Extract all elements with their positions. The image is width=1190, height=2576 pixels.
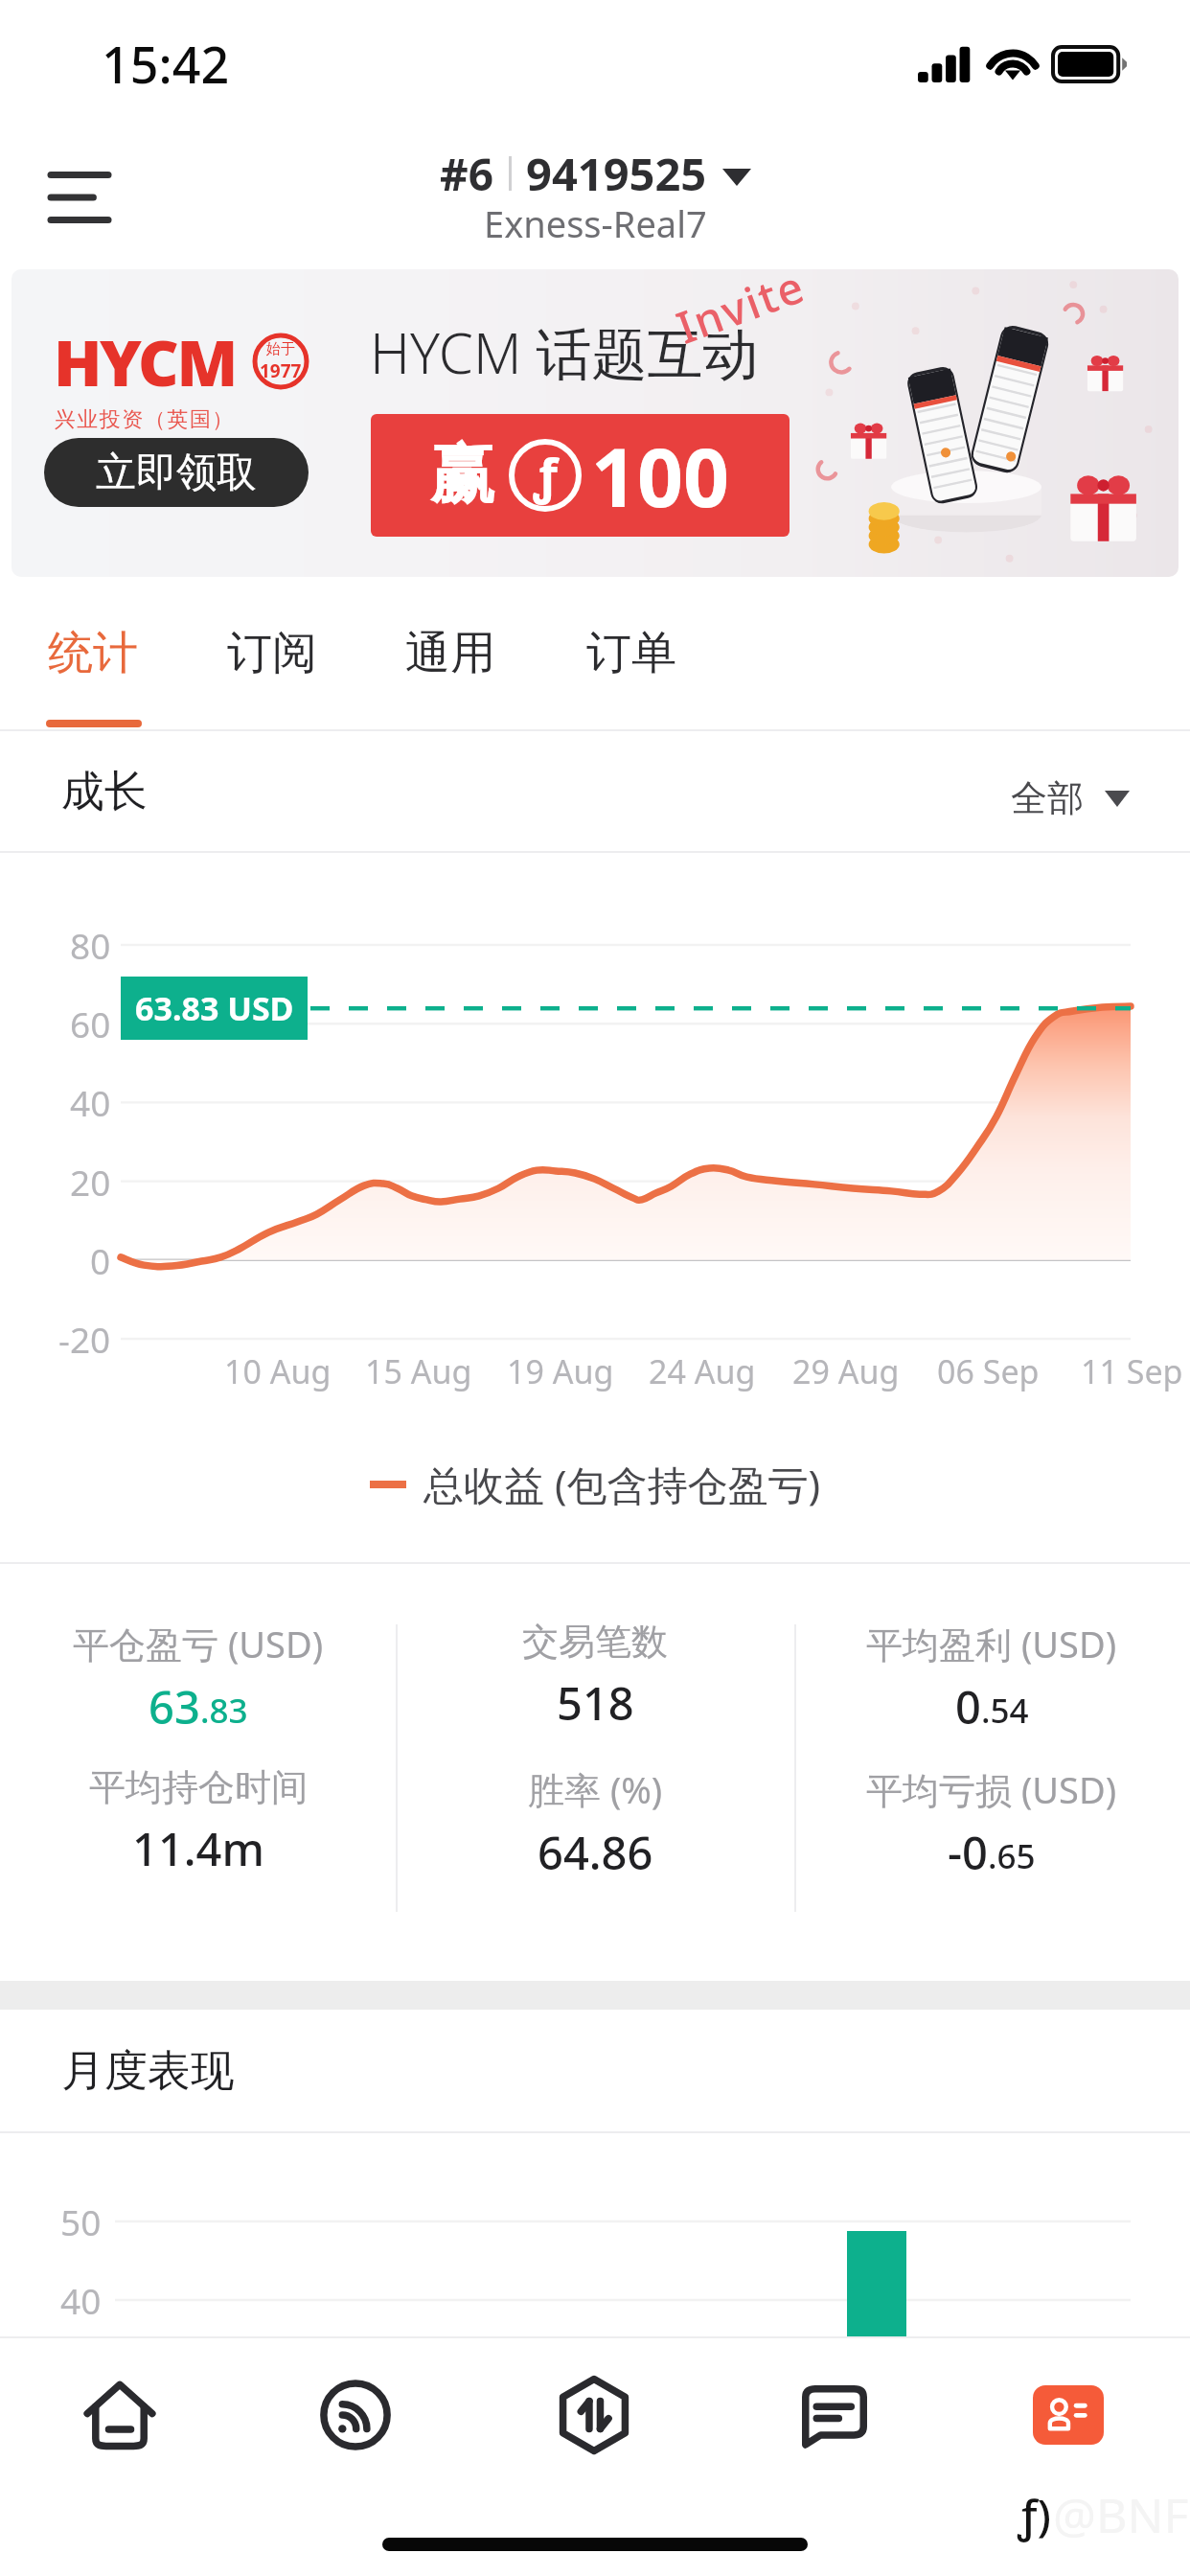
staticText: 兴业投资（英国） [54, 406, 234, 433]
button[interactable]: 胜率 (%) [403, 1764, 787, 1908]
button[interactable]: HYCM [11, 269, 1179, 577]
button[interactable]: Profile [1006, 2353, 1131, 2477]
button[interactable]: 订单 [560, 577, 703, 731]
staticText: @BNF [1053, 2482, 1189, 2547]
staticText: 63.83 USD [135, 986, 294, 1030]
staticText: 80 [70, 921, 111, 969]
staticText: .65 [988, 1833, 1036, 1879]
staticText: 全部 [1011, 775, 1084, 821]
staticText: 订阅 [227, 625, 317, 681]
button[interactable]: 平均亏损 (USD) [800, 1764, 1183, 1908]
staticText: 11.4m [132, 1818, 264, 1879]
staticText: 518 [557, 1672, 634, 1734]
button[interactable]: 平均盈利 (USD) [800, 1619, 1183, 1762]
staticText: 成长 [61, 765, 148, 819]
button[interactable]: 交易笔数 [403, 1619, 787, 1762]
staticText: 始于 [266, 340, 295, 358]
staticText: 24 Aug [649, 1349, 756, 1393]
button[interactable]: 统计 [21, 577, 165, 731]
staticText: 40 [70, 1078, 111, 1126]
staticText: 15:42 [102, 30, 230, 98]
staticText: 50 [60, 2197, 102, 2245]
staticText: .83 [200, 1688, 248, 1734]
button[interactable]: 立即领取 [44, 438, 309, 507]
staticText: 平均持仓时间 [89, 1764, 308, 1810]
staticText: 平均盈利 (USD) [866, 1619, 1117, 1668]
button[interactable]: Menu [27, 149, 132, 245]
button[interactable]: 平均持仓时间 [7, 1764, 390, 1908]
staticText: 平仓盈亏 (USD) [73, 1619, 324, 1668]
button[interactable]: Trade [532, 2353, 656, 2477]
staticText: 100 [591, 421, 730, 530]
staticText: 0 [90, 1236, 111, 1284]
staticText: ƒ [533, 443, 558, 508]
staticText: ƒ) [1018, 2485, 1051, 2545]
staticText: 赢 [430, 434, 495, 517]
staticText: 15 Aug [365, 1349, 472, 1393]
staticText: 40 [60, 2276, 102, 2324]
staticText: 平均亏损 (USD) [866, 1764, 1117, 1814]
staticText: 统计 [48, 625, 138, 681]
staticText: 9419525 [526, 143, 707, 204]
staticText: 订单 [586, 625, 676, 681]
staticText: 19 Aug [507, 1349, 614, 1393]
staticText: .54 [981, 1688, 1029, 1734]
staticText: #6 [440, 144, 494, 204]
button[interactable]: Messages [772, 2353, 897, 2477]
staticText: 10 Aug [224, 1349, 332, 1393]
button[interactable]: Home [57, 2353, 182, 2477]
button[interactable]: 平仓盈亏 (USD) [7, 1619, 390, 1762]
staticText: HYCM 话题互动 [370, 314, 759, 390]
button[interactable]: #6 [440, 143, 751, 254]
staticText: 总收益 (包含持仓盈亏) [423, 1457, 821, 1511]
staticText: 月度表现 [61, 2044, 234, 2099]
staticText: 交易笔数 [522, 1619, 668, 1665]
staticText: Invite [668, 269, 813, 357]
button[interactable]: 全部 [1011, 775, 1130, 821]
staticText: 0 [955, 1676, 981, 1737]
staticText: 20 [70, 1158, 111, 1206]
staticText: Exness-Real7 [484, 198, 707, 248]
staticText: -20 [58, 1315, 111, 1363]
staticText: 立即领取 [96, 448, 257, 498]
button[interactable]: 通用 [378, 577, 522, 731]
staticText: 60 [70, 1000, 111, 1047]
staticText: -0 [948, 1822, 988, 1883]
staticText: 11 Sep [1081, 1349, 1183, 1393]
staticText: 通用 [405, 625, 495, 681]
staticText: 1977 [260, 358, 302, 383]
staticText: 64.86 [538, 1822, 653, 1883]
button[interactable]: 订阅 [200, 577, 344, 731]
staticText: 29 Aug [792, 1349, 900, 1393]
staticText: 胜率 (%) [528, 1764, 663, 1814]
staticText: 06 Sep [937, 1349, 1040, 1393]
button[interactable]: Quotes [293, 2353, 418, 2477]
staticText: HYCM [54, 318, 236, 404]
staticText: 63 [149, 1676, 200, 1737]
